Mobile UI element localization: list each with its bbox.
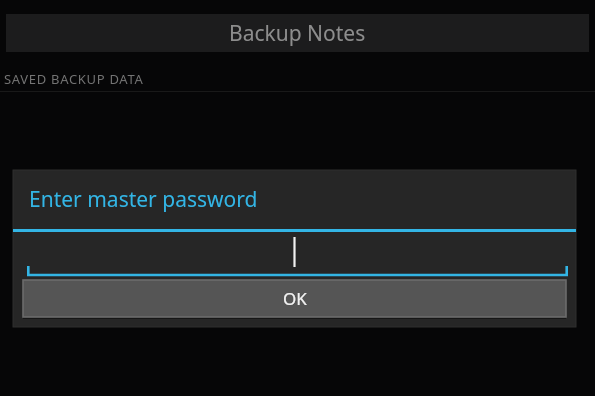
staticText: Enter master password (29, 185, 258, 214)
button[interactable]: Master password input (13, 232, 576, 279)
staticText: OK (283, 287, 307, 310)
staticText: Backup Notes (229, 19, 366, 48)
staticText: SAVED BACKUP DATA (4, 70, 144, 88)
button[interactable]: OK (23, 280, 566, 319)
